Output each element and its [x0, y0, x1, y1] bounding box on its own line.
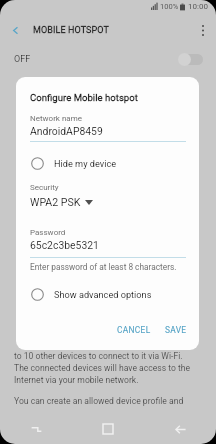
button[interactable]: Navigate up: [0, 16, 30, 44]
button[interactable]: Recent apps: [0, 414, 72, 444]
button[interactable]: OFF: [0, 44, 216, 74]
button[interactable]: SAVE: [160, 321, 192, 339]
staticText: SAVE: [165, 325, 187, 335]
staticText: 65c2c3be5321: [30, 239, 99, 251]
staticText: Show advanced options: [54, 289, 152, 300]
staticText: to 10 other devices to connect to it via…: [14, 351, 183, 361]
staticText: You can create an allowed device profile…: [14, 396, 184, 406]
staticText: AndroidAP8459: [30, 125, 103, 137]
staticText: Configure Mobile hotspot: [30, 92, 138, 103]
button[interactable]: More options: [190, 16, 216, 44]
staticText: MOBILE HOTSPOT: [33, 25, 109, 36]
staticText: WPA2 PSK: [30, 196, 81, 208]
button[interactable]: Show advanced options: [31, 287, 188, 301]
staticText: Security: [30, 183, 59, 192]
button[interactable]: Security type: [30, 196, 93, 208]
staticText: 10:00: [188, 2, 208, 11]
button[interactable]: CANCEL: [112, 321, 156, 339]
staticText: Enter password of at least 8 characters.: [30, 262, 177, 272]
staticText: Password: [30, 228, 66, 237]
button[interactable]: Hide my device: [31, 156, 188, 170]
staticText: Hide my device: [54, 158, 117, 169]
staticText: The connected devices will have access t…: [14, 363, 191, 373]
staticText: CANCEL: [117, 325, 151, 335]
button[interactable]: Home: [72, 414, 144, 444]
button[interactable]: Back: [144, 414, 216, 444]
staticText: 100%: [160, 2, 179, 11]
staticText: Internet via your mobile network.: [14, 375, 139, 385]
staticText: OFF: [14, 54, 31, 65]
staticText: Network name: [30, 114, 82, 123]
